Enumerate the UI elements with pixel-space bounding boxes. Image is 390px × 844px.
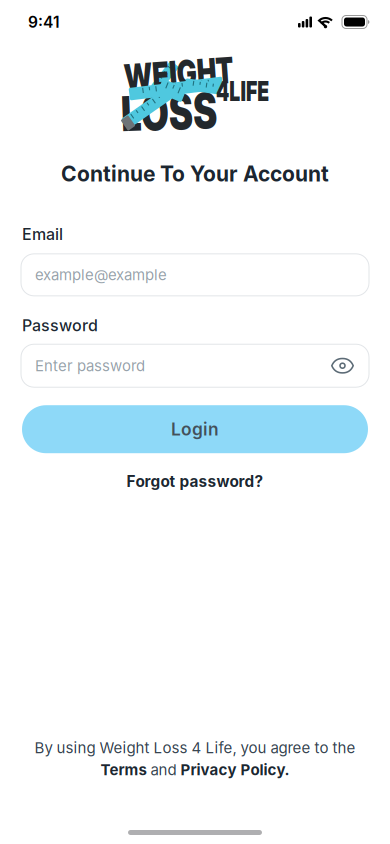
staticText: Password bbox=[22, 316, 98, 335]
button[interactable]: example@example bbox=[0, 254, 390, 296]
staticText: LOSS bbox=[105, 83, 232, 141]
staticText: WEIGHT bbox=[105, 52, 253, 95]
button[interactable]: Enter password bbox=[0, 344, 390, 387]
staticText: Enter password bbox=[35, 357, 145, 375]
button[interactable]: Forgot password? bbox=[126, 472, 263, 491]
staticText: 4LIFE bbox=[204, 74, 280, 108]
staticText: Forgot password? bbox=[126, 472, 263, 491]
button[interactable]: Terms bbox=[100, 761, 146, 779]
staticText: Login bbox=[171, 419, 219, 440]
staticText: 9:41 bbox=[28, 13, 60, 31]
staticText: Privacy Policy. bbox=[180, 761, 289, 779]
staticText: example@example bbox=[35, 266, 167, 284]
staticText: Terms bbox=[100, 761, 146, 779]
button[interactable]: Privacy Policy. bbox=[180, 761, 289, 779]
staticText: Continue To Your Account bbox=[61, 161, 329, 186]
staticText: Email bbox=[22, 224, 63, 244]
staticText: and bbox=[150, 761, 176, 779]
staticText: By using Weight Loss 4 Life, you agree t… bbox=[34, 738, 355, 757]
button[interactable]: Login bbox=[0, 405, 390, 453]
